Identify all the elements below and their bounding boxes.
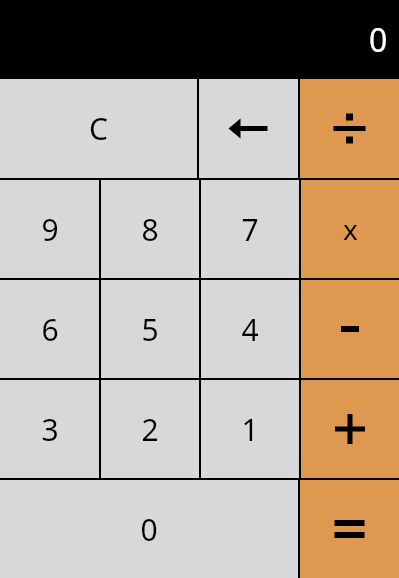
staticText: 7 xyxy=(241,209,259,250)
button[interactable]: 1 xyxy=(201,380,299,478)
staticText: 6 xyxy=(41,309,59,350)
button[interactable]: 5 xyxy=(101,280,199,378)
button[interactable]: 4 xyxy=(201,280,299,378)
staticText: 3 xyxy=(41,409,59,450)
staticText: x xyxy=(343,210,358,248)
staticText: 5 xyxy=(141,309,159,350)
button[interactable]: C xyxy=(0,79,197,178)
button[interactable]: x xyxy=(301,180,399,278)
staticText: 0 xyxy=(369,18,388,62)
button[interactable]: 6 xyxy=(0,280,99,378)
button[interactable]: Equals xyxy=(300,480,399,578)
button[interactable]: 7 xyxy=(201,180,299,278)
staticText: 0 xyxy=(140,509,158,550)
button[interactable]: Minus xyxy=(301,280,399,378)
button[interactable]: Plus xyxy=(301,380,399,478)
button[interactable]: 9 xyxy=(0,180,99,278)
button[interactable]: 2 xyxy=(101,380,199,478)
staticText: 1 xyxy=(241,409,259,450)
staticText: C xyxy=(89,108,108,149)
staticText: 8 xyxy=(141,209,159,250)
staticText: 2 xyxy=(141,409,159,450)
button[interactable]: Divide xyxy=(300,79,399,178)
button[interactable]: 8 xyxy=(101,180,199,278)
staticText: 4 xyxy=(241,309,259,350)
staticText: 9 xyxy=(41,209,59,250)
button[interactable]: 3 xyxy=(0,380,99,478)
button[interactable]: Backspace xyxy=(199,79,298,178)
button[interactable]: 0 xyxy=(0,480,298,578)
